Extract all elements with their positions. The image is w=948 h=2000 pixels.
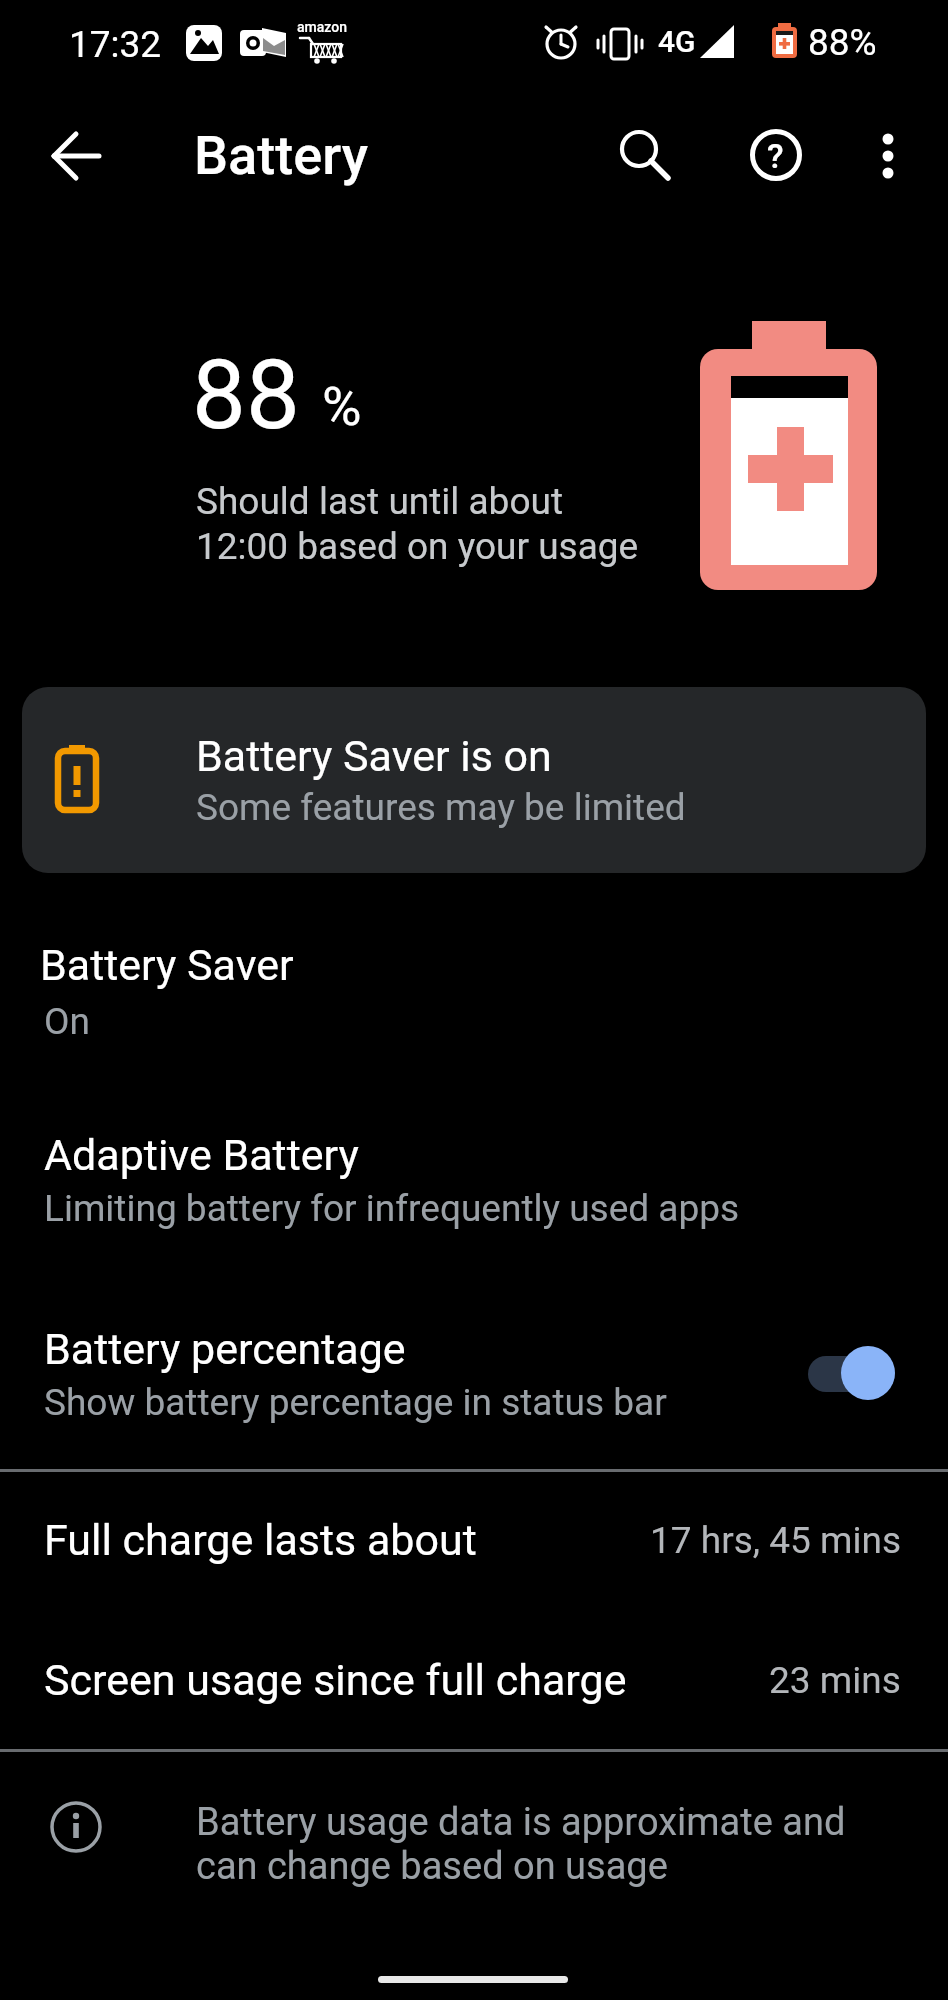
staticText: On [44,1000,90,1043]
staticText: 23 mins [769,1659,901,1702]
staticText: Battery Saver is on [196,731,552,781]
staticText: 12:00 based on your usage [196,525,639,568]
staticText: 17:32 [69,23,162,66]
button[interactable] [0,1108,948,1258]
staticText: Screen usage since full charge [44,1655,627,1705]
button[interactable] [852,119,924,191]
staticText: Battery percentage [44,1324,406,1374]
button[interactable] [40,120,112,192]
staticText: Battery Saver [40,940,294,990]
staticText: Some features may be limited [196,786,686,829]
staticText: 17 hrs, 45 mins [650,1519,901,1562]
button[interactable] [740,119,812,191]
button[interactable] [604,119,676,191]
staticText: ? [767,136,784,176]
button[interactable] [0,1472,948,1600]
staticText: can change based on usage [196,1844,668,1889]
button[interactable] [22,687,926,873]
staticText: Show battery percentage in status bar [44,1381,667,1424]
staticText: Battery [194,124,369,187]
staticText: Should last until about [196,480,564,523]
button[interactable] [0,1612,948,1748]
staticText: amazon [297,19,348,35]
staticText: 4G [658,24,696,59]
button[interactable] [841,1346,895,1400]
staticText: Limiting battery for infrequently used a… [44,1187,740,1230]
staticText: % [322,375,362,438]
button[interactable] [0,1300,948,1450]
staticText: Full charge lasts about [44,1515,477,1565]
staticText: Adaptive Battery [44,1130,359,1180]
staticText: 88% [808,21,877,64]
button[interactable] [0,920,948,1070]
staticText: 88 [192,339,300,452]
staticText: Battery usage data is approximate and [196,1800,846,1845]
